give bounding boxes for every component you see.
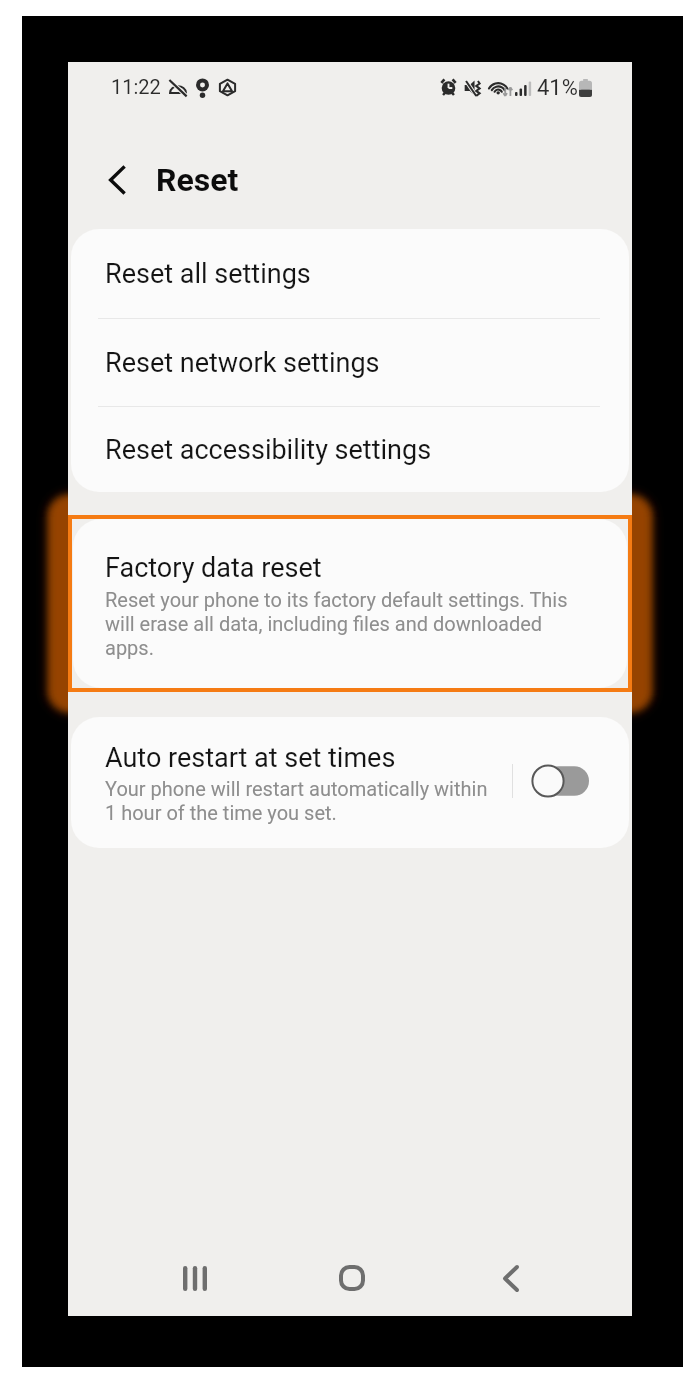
button[interactable]: Reset all settings (71, 229, 629, 318)
button[interactable]: Auto restart at set times (71, 717, 629, 848)
staticText: Auto restart at set times (105, 742, 396, 774)
staticText: 41% (537, 75, 578, 101)
button[interactable]: Recent apps (166, 1249, 224, 1307)
button[interactable]: Factory data reset (73, 519, 627, 688)
button[interactable]: Home (323, 1249, 381, 1307)
staticText: Factory data reset (105, 552, 322, 584)
button[interactable]: Auto restart at set times toggle (531, 764, 589, 798)
button[interactable]: Reset accessibility settings (71, 407, 629, 492)
staticText: Reset (156, 161, 239, 199)
staticText: Your phone will restart automatically wi… (105, 777, 499, 825)
button[interactable]: Reset network settings (71, 319, 629, 406)
staticText: Reset accessibility settings (105, 434, 432, 466)
button[interactable]: Navigate up (88, 151, 146, 209)
staticText: 11:22 (111, 75, 161, 98)
button[interactable]: Back (482, 1249, 540, 1307)
staticText: Reset all settings (105, 258, 311, 290)
staticText: Reset network settings (105, 347, 380, 379)
staticText: Reset your phone to its factory default … (105, 588, 585, 660)
